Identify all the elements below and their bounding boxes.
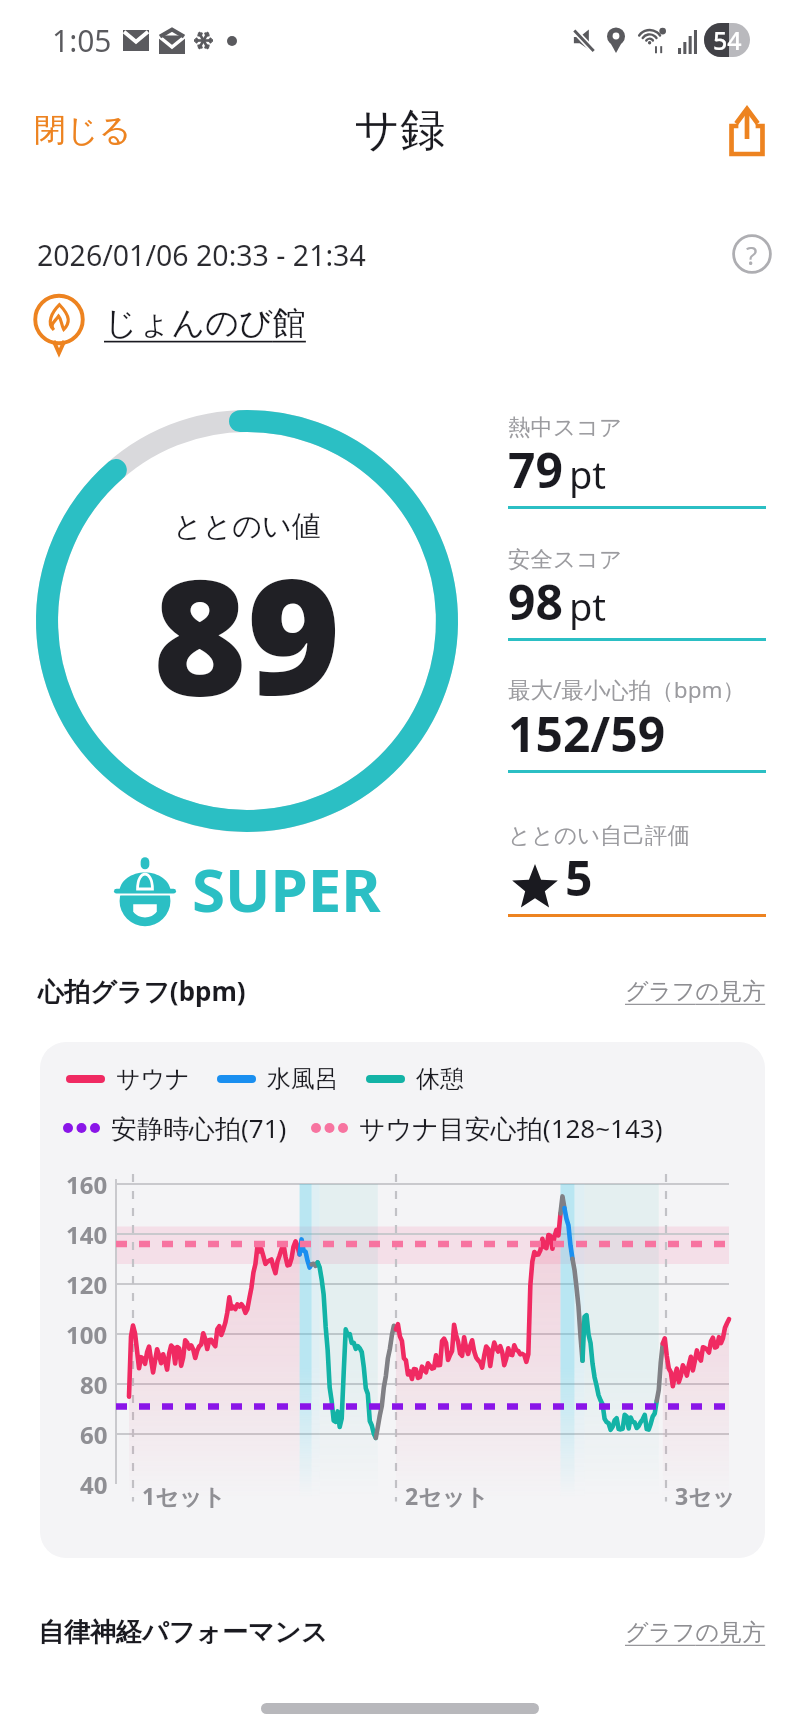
- staticText: 80: [80, 1368, 108, 1401]
- staticText: 40: [80, 1468, 108, 1501]
- staticText: じょんのび館: [104, 302, 306, 344]
- staticText: 60: [80, 1418, 108, 1451]
- staticText: 98: [508, 569, 563, 634]
- staticText: 熱中スコア: [508, 413, 623, 441]
- staticText: pt: [569, 448, 607, 500]
- button[interactable]: 閉じる: [22, 100, 144, 160]
- button[interactable]: グラフの見方: [625, 977, 766, 1006]
- staticText: 2026/01/06 20:33 - 21:34: [37, 236, 366, 275]
- staticText: 水風呂: [267, 1064, 339, 1094]
- staticText: pt: [569, 580, 607, 632]
- staticText: 閉じる: [34, 110, 132, 150]
- staticText: 160: [66, 1168, 108, 1201]
- staticText: 1セット: [142, 1480, 226, 1511]
- staticText: 自律神経パフォーマンス: [38, 1616, 328, 1649]
- staticText: 120: [66, 1268, 108, 1301]
- staticText: 安静時心拍(71): [111, 1110, 287, 1146]
- staticText: サウナ目安心拍(128~143): [359, 1110, 663, 1146]
- button[interactable]: グラフの見方: [625, 1618, 766, 1647]
- staticText: 安全スコア: [508, 545, 623, 573]
- staticText: 1:05: [52, 20, 112, 61]
- staticText: 140: [66, 1218, 108, 1251]
- staticText: 100: [66, 1318, 108, 1351]
- staticText: SUPER: [192, 848, 381, 930]
- staticText: ととのい自己評価: [508, 821, 691, 849]
- staticText: 152/59: [508, 701, 666, 766]
- staticText: サ録: [354, 102, 446, 159]
- staticText: 3セッ: [675, 1480, 736, 1511]
- staticText: グラフの見方: [625, 977, 766, 1006]
- staticText: 最大/最小心拍（bpm）: [508, 674, 746, 705]
- staticText: 2セット: [405, 1480, 489, 1511]
- button[interactable]: Share: [716, 100, 778, 162]
- staticText: 79: [508, 437, 563, 502]
- staticText: サウナ: [116, 1064, 190, 1094]
- staticText: 休憩: [416, 1064, 464, 1094]
- staticText: 89: [153, 524, 341, 742]
- staticText: 5: [565, 845, 593, 910]
- button[interactable]: Help: [726, 228, 778, 280]
- button[interactable]: じょんのび館: [32, 293, 306, 355]
- staticText: 心拍グラフ(bpm): [38, 973, 246, 1009]
- staticText: ?: [746, 237, 758, 272]
- staticText: 54: [713, 23, 742, 57]
- staticText: ととのい値: [173, 508, 321, 545]
- staticText: グラフの見方: [625, 1618, 766, 1647]
